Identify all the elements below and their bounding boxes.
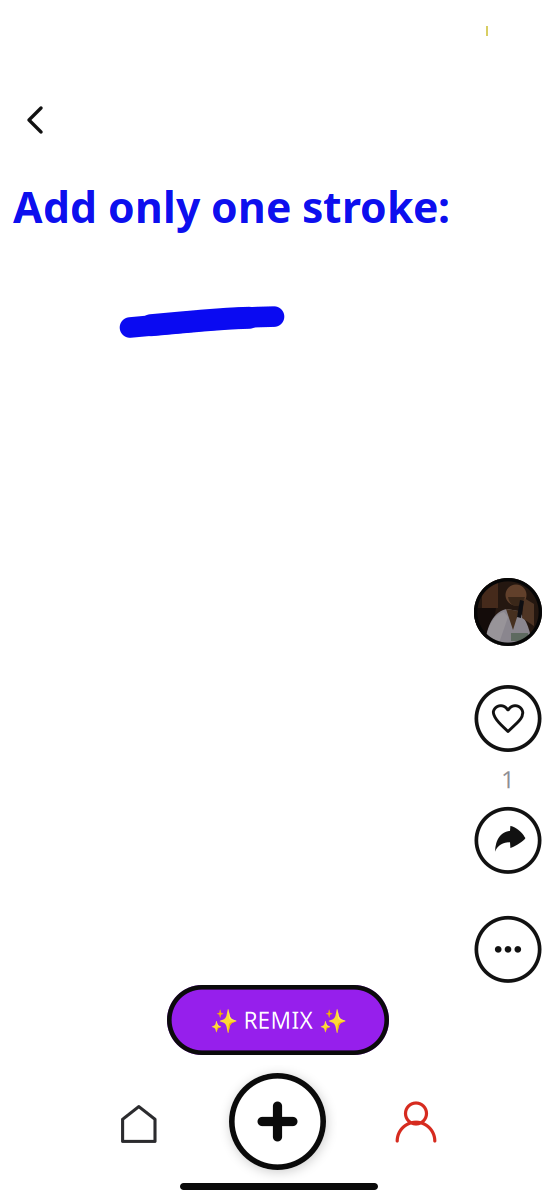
button[interactable]: ✨ REMIX ✨ [167, 985, 389, 1055]
button[interactable]: Create [229, 1073, 326, 1170]
staticText: ✨ REMIX ✨ [209, 1005, 346, 1035]
button[interactable]: Share [474, 807, 541, 874]
staticText: 1 [501, 763, 515, 795]
button[interactable]: Back [9, 94, 61, 146]
staticText: Add only one stroke: [13, 178, 450, 235]
button[interactable]: Like [474, 685, 541, 795]
button[interactable]: More [474, 916, 541, 983]
button[interactable]: Profile [373, 1082, 459, 1162]
button[interactable]: Profile [474, 578, 542, 646]
button[interactable]: Home [96, 1084, 182, 1164]
